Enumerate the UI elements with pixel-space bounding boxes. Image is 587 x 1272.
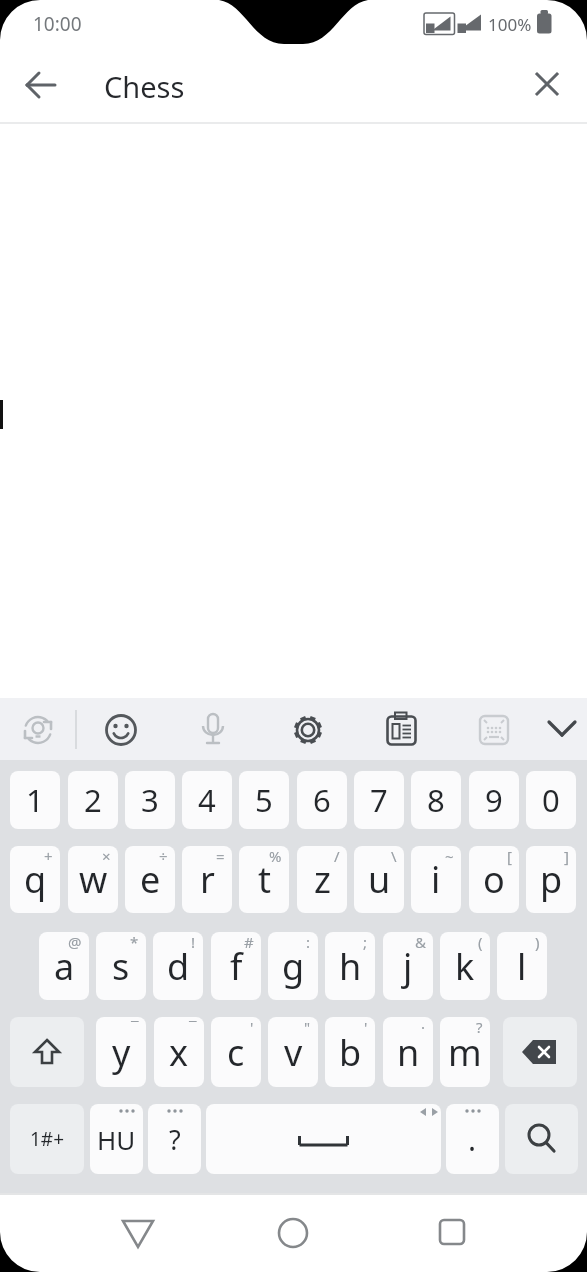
button[interactable] [503, 1017, 577, 1087]
staticText: ' [364, 1017, 368, 1037]
staticText: 2 [84, 779, 102, 821]
staticText: a [54, 942, 75, 991]
staticText: h [339, 942, 362, 991]
button[interactable]: i [411, 846, 461, 913]
button[interactable]: f [211, 932, 261, 1000]
button[interactable]: u [354, 846, 404, 913]
button[interactable]: a [39, 932, 89, 1000]
button[interactable] [206, 1104, 441, 1174]
button[interactable]: h [325, 932, 375, 1000]
staticText: d [167, 942, 190, 991]
button[interactable]: o [469, 846, 519, 913]
staticText: * [130, 932, 139, 952]
staticText: [ [507, 846, 512, 866]
button[interactable]: 7 [354, 771, 404, 829]
staticText: g [282, 942, 305, 991]
staticText: × [102, 846, 111, 866]
staticText: 5 [255, 779, 273, 821]
button[interactable]: 8 [411, 771, 461, 829]
staticText: r [200, 855, 215, 904]
button[interactable]: y [96, 1017, 146, 1087]
staticText: / [334, 846, 340, 866]
button[interactable]: ? [148, 1104, 201, 1174]
staticText: ? [169, 1121, 181, 1158]
staticText: p [540, 855, 563, 904]
button[interactable]: t [239, 846, 289, 913]
staticText: i [431, 855, 441, 904]
staticText: % [269, 846, 282, 866]
button[interactable]: 1 [10, 771, 60, 829]
staticText: ] [564, 846, 569, 866]
button[interactable]: n [383, 1017, 433, 1087]
staticText: k [455, 942, 475, 991]
button[interactable]: q [10, 846, 60, 913]
staticText: ? [476, 1017, 483, 1037]
button[interactable]: v [268, 1017, 318, 1087]
button[interactable]: 5 [239, 771, 289, 829]
staticText: Chess [104, 67, 185, 106]
button[interactable]: b [325, 1017, 375, 1087]
button[interactable] [10, 1017, 84, 1087]
button[interactable] [538, 705, 586, 753]
button[interactable] [376, 705, 424, 753]
button[interactable] [505, 1104, 578, 1174]
staticText: ! [191, 932, 196, 952]
staticText: : [306, 932, 311, 952]
button[interactable] [189, 705, 237, 753]
button[interactable]: 2 [68, 771, 118, 829]
button[interactable] [117, 1213, 159, 1255]
button[interactable]: 9 [469, 771, 519, 829]
button[interactable]: k [440, 932, 490, 1000]
button[interactable]: 3 [125, 771, 175, 829]
staticText: ¯ [189, 1017, 197, 1037]
staticText: " [304, 1017, 311, 1037]
staticText: # [244, 932, 254, 952]
staticText: z [314, 855, 331, 904]
staticText: ' [250, 1017, 254, 1037]
button[interactable] [20, 64, 62, 106]
staticText: j [403, 942, 413, 991]
button[interactable]: 4 [182, 771, 232, 829]
button[interactable] [86, 50, 510, 118]
button[interactable]: 0 [526, 771, 576, 829]
button[interactable] [272, 1212, 314, 1254]
staticText: 1 [26, 779, 44, 821]
staticText: n [397, 1028, 420, 1077]
button[interactable] [470, 705, 518, 753]
staticText: b [339, 1028, 362, 1077]
staticText: HU [97, 1122, 136, 1157]
button[interactable]: x [154, 1017, 204, 1087]
staticText: \ [391, 846, 397, 866]
staticText: q [24, 855, 47, 904]
button[interactable]: m [440, 1017, 490, 1087]
staticText: 8 [427, 779, 445, 821]
staticText: l [517, 942, 527, 991]
button[interactable] [14, 705, 62, 753]
button[interactable] [284, 705, 332, 753]
button[interactable]: 6 [297, 771, 347, 829]
button[interactable]: e [125, 846, 175, 913]
staticText: · [421, 1017, 426, 1037]
button[interactable]: HU [90, 1104, 143, 1174]
button[interactable]: z [297, 846, 347, 913]
staticText: . [468, 1119, 477, 1160]
button[interactable]: w [68, 846, 118, 913]
button[interactable]: r [182, 846, 232, 913]
button[interactable]: 1#+ [10, 1104, 84, 1174]
button[interactable]: l [497, 932, 547, 1000]
button[interactable]: . [446, 1104, 499, 1174]
button[interactable] [431, 1211, 473, 1253]
button[interactable]: j [383, 932, 433, 1000]
staticText: v [284, 1028, 303, 1077]
button[interactable] [97, 705, 145, 753]
button[interactable]: g [268, 932, 318, 1000]
button[interactable]: c [211, 1017, 261, 1087]
button[interactable] [526, 63, 568, 105]
staticText: 0 [542, 779, 560, 821]
button[interactable]: d [153, 932, 203, 1000]
staticText: = [216, 846, 225, 866]
staticText: 100% [488, 13, 532, 36]
staticText: 6 [313, 779, 331, 821]
button[interactable]: p [526, 846, 576, 913]
button[interactable]: s [96, 932, 146, 1000]
